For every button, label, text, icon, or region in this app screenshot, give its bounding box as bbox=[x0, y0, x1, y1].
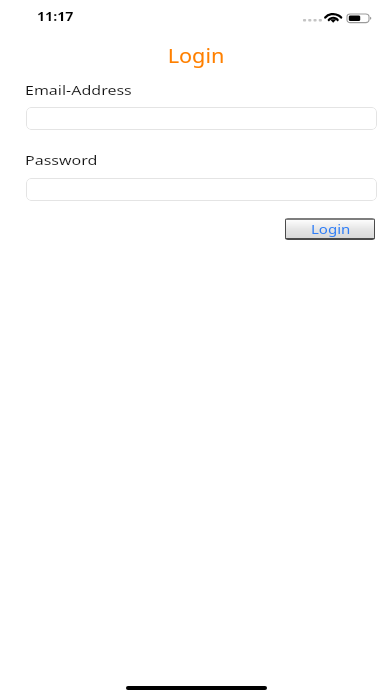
staticText: Password bbox=[25, 151, 98, 169]
other: Cellular signal bbox=[303, 19, 321, 23]
button[interactable]: Login bbox=[285, 218, 375, 240]
staticText: Login bbox=[15, 42, 377, 68]
staticText: 11:17 bbox=[37, 9, 74, 25]
other: Battery bbox=[347, 14, 373, 26]
staticText: Login bbox=[311, 221, 351, 237]
button[interactable]: Email-Address input bbox=[26, 107, 377, 130]
staticText: Email-Address bbox=[25, 81, 132, 99]
button[interactable]: Password input bbox=[26, 178, 377, 201]
other: Wi-Fi bbox=[324, 11, 342, 25]
